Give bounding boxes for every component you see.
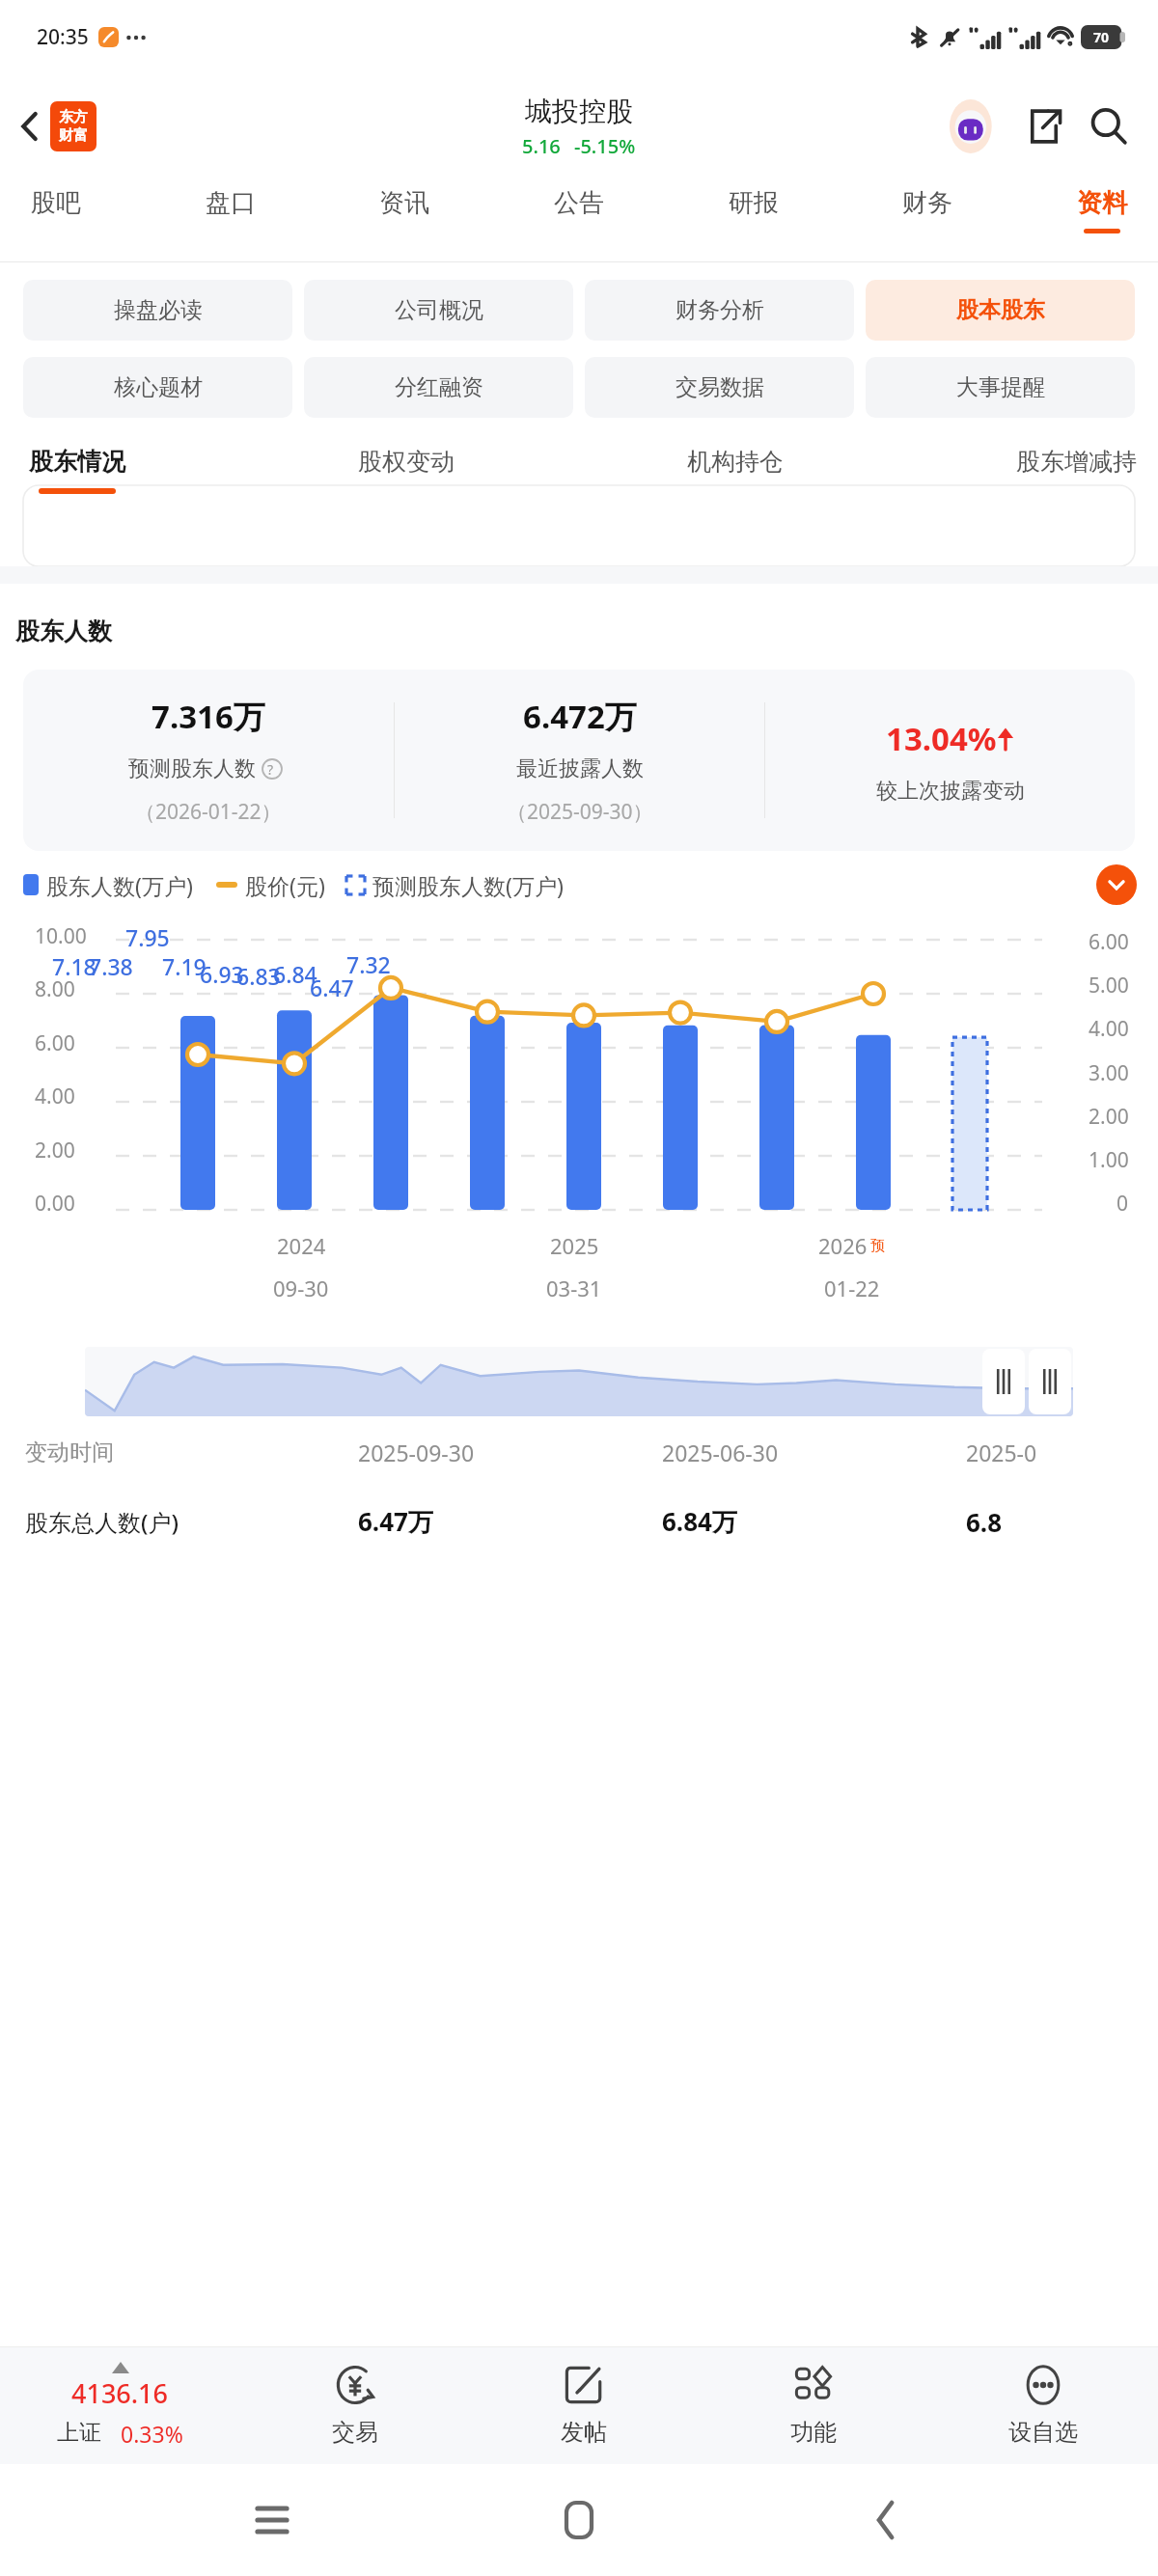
staticText: 股价(元)	[245, 870, 325, 900]
button[interactable]: 交易	[240, 2354, 469, 2456]
staticText: 03-31	[546, 1274, 602, 1302]
staticText: （2026-01-22）	[135, 798, 282, 826]
staticText: 6.8	[966, 1505, 1133, 1539]
staticText: 财务分析	[675, 296, 764, 324]
staticText: 上证	[57, 2419, 101, 2447]
staticText: 2026	[818, 1231, 868, 1260]
button[interactable]: 搜索	[1081, 98, 1137, 154]
staticText: 设自选	[1008, 2418, 1078, 2447]
staticText: 13.04%	[886, 717, 997, 760]
staticText: 7.316万	[152, 695, 265, 738]
button[interactable]: 4136.16	[0, 2354, 240, 2456]
button[interactable]: 财务	[896, 179, 958, 236]
staticText: 预	[870, 1237, 885, 1255]
button[interactable]: 公告	[548, 179, 610, 236]
staticText: 6.93	[200, 959, 244, 989]
button[interactable]: 展开图例	[1096, 864, 1137, 905]
staticText: 股东情况	[29, 447, 125, 477]
staticText: 2025	[550, 1231, 599, 1260]
button[interactable]: 功能	[699, 2354, 928, 2456]
staticText: 交易数据	[675, 373, 764, 401]
staticText: 7.38	[89, 951, 133, 981]
button[interactable]: 分红融资	[304, 357, 573, 418]
staticText: 8.00	[35, 975, 75, 1003]
button[interactable]: AI 助手	[948, 97, 1006, 155]
staticText: 功能	[790, 2418, 837, 2447]
staticText: 盘口	[206, 187, 256, 219]
button[interactable]: 股东增减持	[1012, 441, 1141, 494]
staticText: 2025-0	[966, 1438, 1133, 1467]
staticText: 6.472万	[523, 695, 637, 738]
staticText: 4.00	[35, 1082, 75, 1110]
staticText: 公告	[554, 187, 604, 219]
button[interactable]: 返回 东方财富	[8, 96, 106, 157]
staticText: 股东增减持	[1016, 447, 1137, 477]
staticText: 研报	[729, 187, 779, 219]
staticText: 5.00	[1089, 972, 1129, 1000]
staticText: 股吧	[31, 187, 81, 219]
staticText: 财富	[59, 126, 88, 145]
staticText: 2025-09-30	[358, 1438, 662, 1467]
staticText: 0.33%	[121, 2419, 183, 2449]
button[interactable]: 股权变动	[354, 441, 458, 494]
staticText: 6.84万	[662, 1504, 966, 1539]
staticText: -5.15%	[574, 133, 636, 159]
staticText: 预测股东人数	[128, 755, 256, 782]
staticText: 20:35	[37, 23, 89, 51]
staticText: 6.83	[236, 961, 281, 991]
staticText: 预测股东人数(万户)	[372, 870, 564, 900]
staticText: 股权变动	[358, 447, 455, 477]
button[interactable]: 资讯	[373, 179, 435, 236]
staticText: 3.00	[1089, 1059, 1129, 1087]
button[interactable]: 分享	[1017, 99, 1071, 153]
staticText: 发帖	[561, 2418, 607, 2447]
staticText: 机构持仓	[687, 447, 784, 477]
button[interactable]: 操盘必读	[23, 280, 292, 341]
button[interactable]: 时间轴缩放	[85, 1347, 1073, 1416]
staticText: 0	[1117, 1190, 1129, 1218]
staticText: 10.00	[35, 922, 87, 950]
button[interactable]: 7.316万	[23, 695, 1135, 826]
staticText: 0.00	[35, 1190, 75, 1218]
staticText: 70	[1093, 28, 1110, 46]
button[interactable]: 大事提醒	[866, 357, 1135, 418]
staticText: 大事提醒	[956, 373, 1045, 401]
button[interactable]: 核心题材	[23, 357, 292, 418]
staticText: 资讯	[379, 187, 429, 219]
staticText: 6.47	[310, 973, 354, 1002]
button[interactable]: 股东情况	[25, 441, 129, 500]
staticText: 股东总人数(户)	[25, 1506, 358, 1538]
staticText: 2.00	[1089, 1103, 1129, 1131]
staticText: 6.00	[35, 1029, 75, 1057]
staticText: 财务	[902, 187, 952, 219]
button[interactable]: 研报	[723, 179, 785, 236]
staticText: 01-22	[824, 1274, 880, 1302]
button[interactable]: 交易数据	[585, 357, 854, 418]
button[interactable]: 发帖	[469, 2354, 699, 2456]
staticText: 7.32	[346, 949, 391, 979]
button[interactable]: 最近任务	[237, 2485, 307, 2555]
staticText: 变动时间	[25, 1439, 358, 1466]
button[interactable]: 盘口	[200, 179, 262, 236]
staticText: 分红融资	[395, 373, 483, 401]
button[interactable]: 财务分析	[585, 280, 854, 341]
staticText: ?	[267, 760, 274, 779]
button[interactable]: 股吧	[25, 179, 87, 236]
button[interactable]: 资料	[1071, 179, 1133, 241]
button[interactable]: 股本股东	[866, 280, 1135, 341]
button[interactable]: 主屏幕	[544, 2485, 614, 2555]
staticText: 6.84	[273, 959, 317, 989]
staticText: 7.95	[125, 922, 170, 952]
staticText: （2025-09-30）	[507, 798, 653, 826]
button[interactable]: 机构持仓	[683, 441, 787, 494]
button[interactable]: 返回	[851, 2485, 921, 2555]
button[interactable]: 设自选	[928, 2354, 1158, 2456]
staticText: 城投控股	[525, 95, 633, 128]
staticText: 6.47万	[358, 1504, 662, 1539]
staticText: 4.00	[1089, 1015, 1129, 1043]
staticText: 操盘必读	[114, 296, 203, 324]
staticText: 公司概况	[395, 296, 483, 324]
staticText: 最近披露人数	[516, 755, 644, 782]
staticText: 7.19	[162, 951, 207, 981]
button[interactable]: 公司概况	[304, 280, 573, 341]
